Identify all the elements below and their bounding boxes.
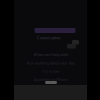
staticText: Ask anything about your day — [26, 60, 74, 65]
staticText: Available on iPhone — [34, 77, 67, 82]
staticText: Try it now — [42, 68, 59, 74]
staticText: Conversation — [37, 35, 60, 40]
staticText: What can I help with — [33, 52, 67, 57]
